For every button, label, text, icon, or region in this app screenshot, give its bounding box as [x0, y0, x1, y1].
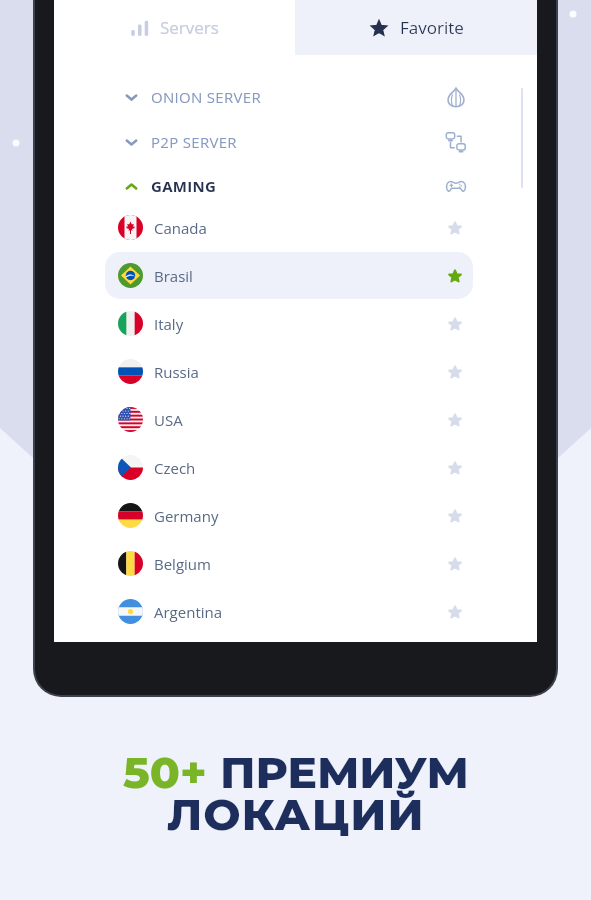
button[interactable]: Add Canada to favorites — [438, 211, 472, 245]
button[interactable]: Germany — [105, 492, 473, 539]
button[interactable]: Argentina — [105, 588, 473, 635]
button[interactable]: ONION SERVER — [441, 82, 471, 112]
staticText: P2P SERVER — [151, 132, 237, 152]
button[interactable]: Favorite — [295, 0, 537, 55]
button[interactable]: Brasil — [105, 252, 473, 299]
button[interactable]: Add Belgium to favorites — [438, 547, 472, 581]
staticText: Germany — [154, 506, 219, 526]
button[interactable]: Czech — [105, 444, 473, 491]
staticText: Czech — [154, 458, 196, 478]
staticText: Favorite — [400, 16, 464, 39]
button[interactable]: Add Czech to favorites — [438, 451, 472, 485]
button[interactable]: Remove Brasil from favorites — [438, 259, 472, 293]
button[interactable]: Russia — [105, 348, 473, 395]
staticText: GAMING — [151, 176, 217, 196]
staticText: Belgium — [154, 554, 211, 574]
button[interactable]: Add Russia to favorites — [438, 355, 472, 389]
button[interactable]: Add USA to favorites — [438, 403, 472, 437]
staticText: Servers — [160, 16, 219, 39]
button[interactable]: Add Italy to favorites — [438, 307, 472, 341]
staticText: ПРЕМИУМ — [220, 745, 469, 799]
button[interactable]: ONION SERVER — [54, 75, 537, 119]
button[interactable]: Belgium — [105, 540, 473, 587]
staticText: USA — [154, 410, 183, 430]
staticText: Italy — [154, 314, 184, 334]
staticText: ONION SERVER — [151, 87, 261, 107]
staticText: 50+ — [123, 745, 220, 799]
staticText: Argentina — [154, 602, 223, 622]
button[interactable]: Canada — [105, 204, 473, 251]
button[interactable]: Add Argentina to favorites — [438, 595, 472, 629]
button[interactable]: GAMING — [54, 164, 537, 208]
button[interactable]: Italy — [105, 300, 473, 347]
button[interactable]: P2P SERVER — [441, 127, 471, 157]
button[interactable]: Add Germany to favorites — [438, 499, 472, 533]
staticText: Russia — [154, 362, 199, 382]
button[interactable]: P2P SERVER — [54, 120, 537, 164]
button[interactable]: Servers — [54, 0, 295, 55]
button[interactable]: GAMING — [441, 171, 471, 201]
button[interactable]: USA — [105, 396, 473, 443]
staticText: Brasil — [154, 266, 193, 286]
staticText: Canada — [154, 218, 207, 238]
staticText: ЛОКАЦИЙ — [167, 787, 425, 841]
